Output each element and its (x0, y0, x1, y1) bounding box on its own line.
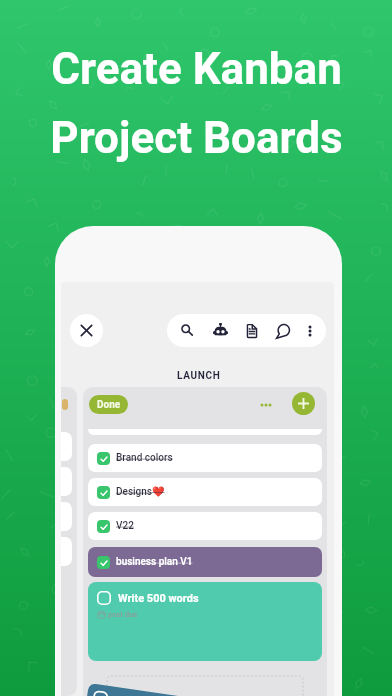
staticText: Brand colors (116, 452, 173, 464)
staticText: V22 (116, 520, 134, 532)
button[interactable]: More options (296, 314, 324, 347)
button[interactable]: Comments (269, 314, 297, 347)
staticText: Write 500 words (118, 592, 199, 605)
button[interactable]: Document (238, 314, 266, 347)
button[interactable]: Close (70, 314, 103, 347)
button[interactable]: V22 (88, 512, 322, 540)
staticText: business plan V1 (116, 556, 193, 568)
button[interactable]: Brand colors (88, 444, 322, 472)
staticText: Project Boards (50, 112, 343, 164)
staticText: Done (97, 399, 121, 411)
button[interactable]: Designs❤️ (88, 478, 322, 506)
button[interactable]: business plan V1 (88, 547, 322, 577)
button[interactable]: Assistant (206, 314, 234, 347)
button[interactable]: Add card (292, 392, 315, 415)
button[interactable]: Column options (256, 395, 276, 415)
button[interactable]: Write 500 words (88, 582, 322, 661)
staticText: LAUNCH (177, 370, 221, 382)
staticText: post due (108, 610, 138, 619)
button[interactable]: Search (173, 314, 201, 347)
button[interactable]: Done (89, 395, 128, 414)
staticText: Create Kanban (51, 43, 342, 95)
staticText: Designs❤️ (116, 486, 165, 498)
